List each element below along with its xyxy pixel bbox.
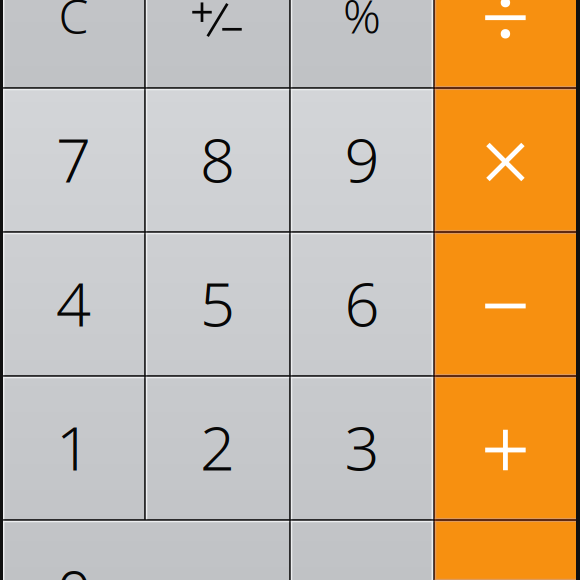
staticText: 1 bbox=[56, 406, 91, 487]
button[interactable]: 1 bbox=[3, 377, 144, 519]
button[interactable]: 5 bbox=[146, 233, 289, 375]
staticText: 7 bbox=[56, 118, 91, 199]
staticText: 8 bbox=[200, 118, 235, 199]
button[interactable]: 4 bbox=[3, 233, 144, 375]
button[interactable]: Clear bbox=[3, 0, 144, 87]
button[interactable]: Subtract bbox=[435, 233, 576, 375]
button[interactable]: Equals bbox=[435, 521, 576, 580]
button[interactable]: Decimal point bbox=[291, 521, 433, 580]
button[interactable]: 3 bbox=[291, 377, 433, 519]
staticText: 0 bbox=[57, 550, 92, 580]
button[interactable]: Percent bbox=[291, 0, 433, 87]
button[interactable]: 0 bbox=[3, 521, 289, 580]
button[interactable]: 9 bbox=[291, 89, 433, 231]
staticText: 3 bbox=[344, 406, 379, 487]
button[interactable]: 7 bbox=[3, 89, 144, 231]
staticText: C bbox=[59, 0, 89, 47]
staticText: 6 bbox=[344, 262, 379, 343]
button[interactable]: Plus minus bbox=[146, 0, 289, 87]
button[interactable]: Divide bbox=[435, 0, 576, 87]
button[interactable]: 2 bbox=[146, 377, 289, 519]
staticText: 2 bbox=[200, 406, 235, 487]
button[interactable]: 8 bbox=[146, 89, 289, 231]
staticText: % bbox=[343, 0, 381, 46]
staticText: 9 bbox=[344, 118, 379, 199]
button[interactable]: 6 bbox=[291, 233, 433, 375]
staticText: 4 bbox=[56, 262, 91, 343]
button[interactable]: Add bbox=[435, 377, 576, 519]
button[interactable]: Multiply bbox=[435, 89, 576, 231]
staticText: 5 bbox=[200, 262, 235, 343]
